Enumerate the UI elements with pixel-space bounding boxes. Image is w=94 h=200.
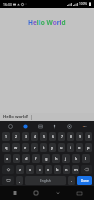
staticText: 4 (34, 134, 36, 139)
staticText: Hello world! (3, 114, 29, 120)
staticText: 7 (61, 134, 63, 139)
button[interactable]: 7 (58, 132, 65, 141)
staticText: s (16, 156, 18, 161)
button[interactable]: 4 (31, 132, 38, 141)
button[interactable]: h (52, 154, 60, 163)
staticText: , (19, 178, 21, 183)
button[interactable]: Done (77, 176, 92, 185)
button[interactable]: Keyboard layout (73, 187, 85, 199)
button[interactable]: English (25, 176, 66, 185)
button[interactable]: v (45, 165, 52, 174)
button[interactable]: g (42, 154, 50, 163)
button[interactable]: o (76, 143, 83, 152)
button[interactable]: r (31, 143, 38, 152)
staticText: w (14, 145, 18, 150)
staticText: a (6, 156, 9, 161)
staticText: 0 (88, 134, 90, 139)
staticText: h (55, 156, 58, 161)
staticText: u (60, 145, 63, 150)
button[interactable]: a (4, 154, 11, 163)
staticText: i (70, 145, 72, 150)
button[interactable]: t (40, 143, 47, 152)
button[interactable]: c (36, 165, 43, 174)
button[interactable]: 1 (2, 132, 10, 141)
staticText: 1 (5, 134, 7, 139)
staticText: Hello World (28, 18, 66, 27)
staticText: f (35, 156, 37, 161)
button[interactable]: 8 (67, 132, 74, 141)
staticText: Done (81, 179, 89, 183)
staticText: r (34, 145, 36, 150)
staticText: t (43, 145, 45, 150)
button[interactable]: Shift (2, 165, 14, 174)
button[interactable]: . (68, 176, 75, 185)
button[interactable]: n (63, 165, 70, 174)
button[interactable]: k (72, 154, 80, 163)
staticText: e (24, 145, 27, 150)
staticText: x (29, 167, 32, 172)
staticText: 6 (52, 134, 54, 139)
button[interactable]: p (85, 143, 92, 152)
button[interactable]: Home (30, 187, 42, 199)
staticText: q (5, 145, 8, 150)
staticText: z (19, 167, 21, 172)
staticText: v (47, 167, 50, 172)
staticText: 2 (15, 134, 17, 139)
button[interactable]: Recents (9, 187, 21, 199)
staticText: . (71, 178, 73, 183)
button[interactable]: Stickers (20, 121, 30, 131)
staticText: l (85, 156, 87, 161)
staticText: y (51, 145, 54, 150)
button[interactable]: 9 (76, 132, 83, 141)
button[interactable]: Clipboard (35, 121, 45, 131)
staticText: o (78, 145, 81, 150)
button[interactable]: Emoji (5, 121, 15, 131)
button[interactable]: z (16, 165, 24, 174)
button[interactable]: f (32, 154, 40, 163)
button[interactable]: d (22, 154, 30, 163)
button[interactable]: j (62, 154, 70, 163)
button[interactable]: i (67, 143, 74, 152)
button[interactable]: 5 (40, 132, 47, 141)
button[interactable]: 2 (12, 132, 20, 141)
staticText: 9 (79, 134, 81, 139)
staticText: g (45, 156, 48, 161)
button[interactable]: 0 (85, 132, 92, 141)
staticText: 5 (43, 134, 45, 139)
staticText: 100% (79, 2, 88, 6)
button[interactable]: e (22, 143, 29, 152)
staticText: 16:33 (3, 2, 12, 7)
button[interactable]: x (26, 165, 34, 174)
button[interactable]: Hide keyboard (52, 187, 64, 199)
staticText: p (87, 145, 90, 150)
button[interactable]: More options (79, 121, 89, 131)
button[interactable]: , (16, 176, 23, 185)
button[interactable]: 6 (49, 132, 56, 141)
button[interactable]: Voice input (49, 121, 59, 131)
staticText: d (25, 156, 28, 161)
button[interactable]: 3 (22, 132, 29, 141)
button[interactable]: m (72, 165, 79, 174)
staticText: English (40, 179, 51, 183)
button[interactable]: s (13, 154, 20, 163)
staticText: n (65, 167, 68, 172)
button[interactable]: Backspace (81, 165, 92, 174)
button[interactable]: Hello world! (2, 114, 30, 120)
staticText: 3 (25, 134, 27, 139)
staticText: j (65, 156, 67, 161)
button[interactable]: q (2, 143, 10, 152)
button[interactable]: Settings (64, 121, 74, 131)
button[interactable]: l (82, 154, 90, 163)
staticText: k (75, 156, 78, 161)
button[interactable]: Symbols (2, 176, 14, 185)
button[interactable]: u (58, 143, 65, 152)
staticText: c (39, 167, 41, 172)
button[interactable]: b (54, 165, 61, 174)
button[interactable]: y (49, 143, 56, 152)
staticText: m (74, 167, 78, 172)
staticText: 8 (70, 134, 72, 139)
button[interactable]: w (12, 143, 20, 152)
staticText: b (56, 167, 59, 172)
